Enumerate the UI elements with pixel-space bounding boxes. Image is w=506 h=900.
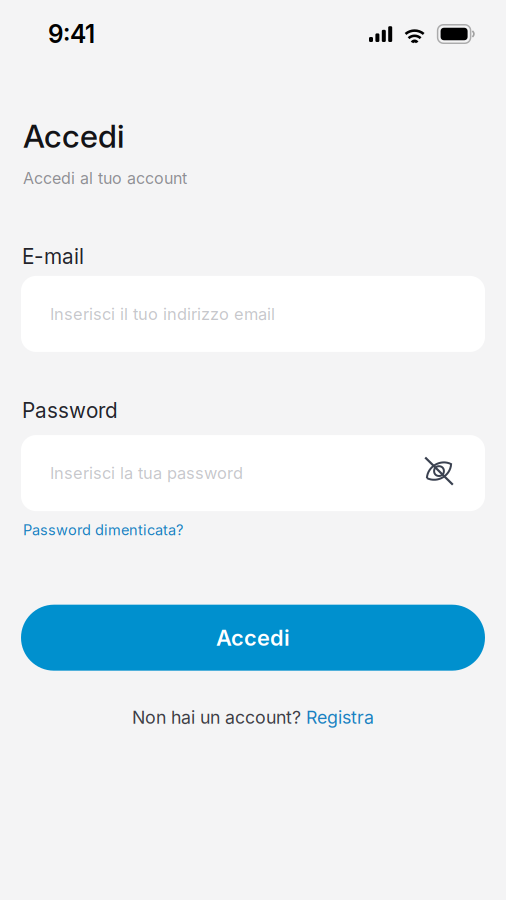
staticText: Inserisci il tuo indirizzo email xyxy=(50,304,275,324)
staticText: Password dimenticata? xyxy=(23,521,183,539)
button[interactable]: Mostra password xyxy=(424,458,454,488)
staticText: Registra xyxy=(306,707,374,728)
staticText: E-mail xyxy=(22,244,84,269)
button[interactable]: Accedi xyxy=(0,605,506,671)
button[interactable]: Registra xyxy=(306,707,374,728)
staticText: Password xyxy=(22,398,118,423)
staticText: Accedi al tuo account xyxy=(23,168,187,188)
staticText: Accedi xyxy=(23,117,124,155)
staticText: 9:41 xyxy=(48,19,95,49)
button[interactable]: Password dimenticata? xyxy=(0,521,183,539)
staticText: Non hai un account? xyxy=(132,707,306,728)
staticText: Accedi xyxy=(216,624,290,651)
staticText: Inserisci la tua password xyxy=(50,463,243,483)
